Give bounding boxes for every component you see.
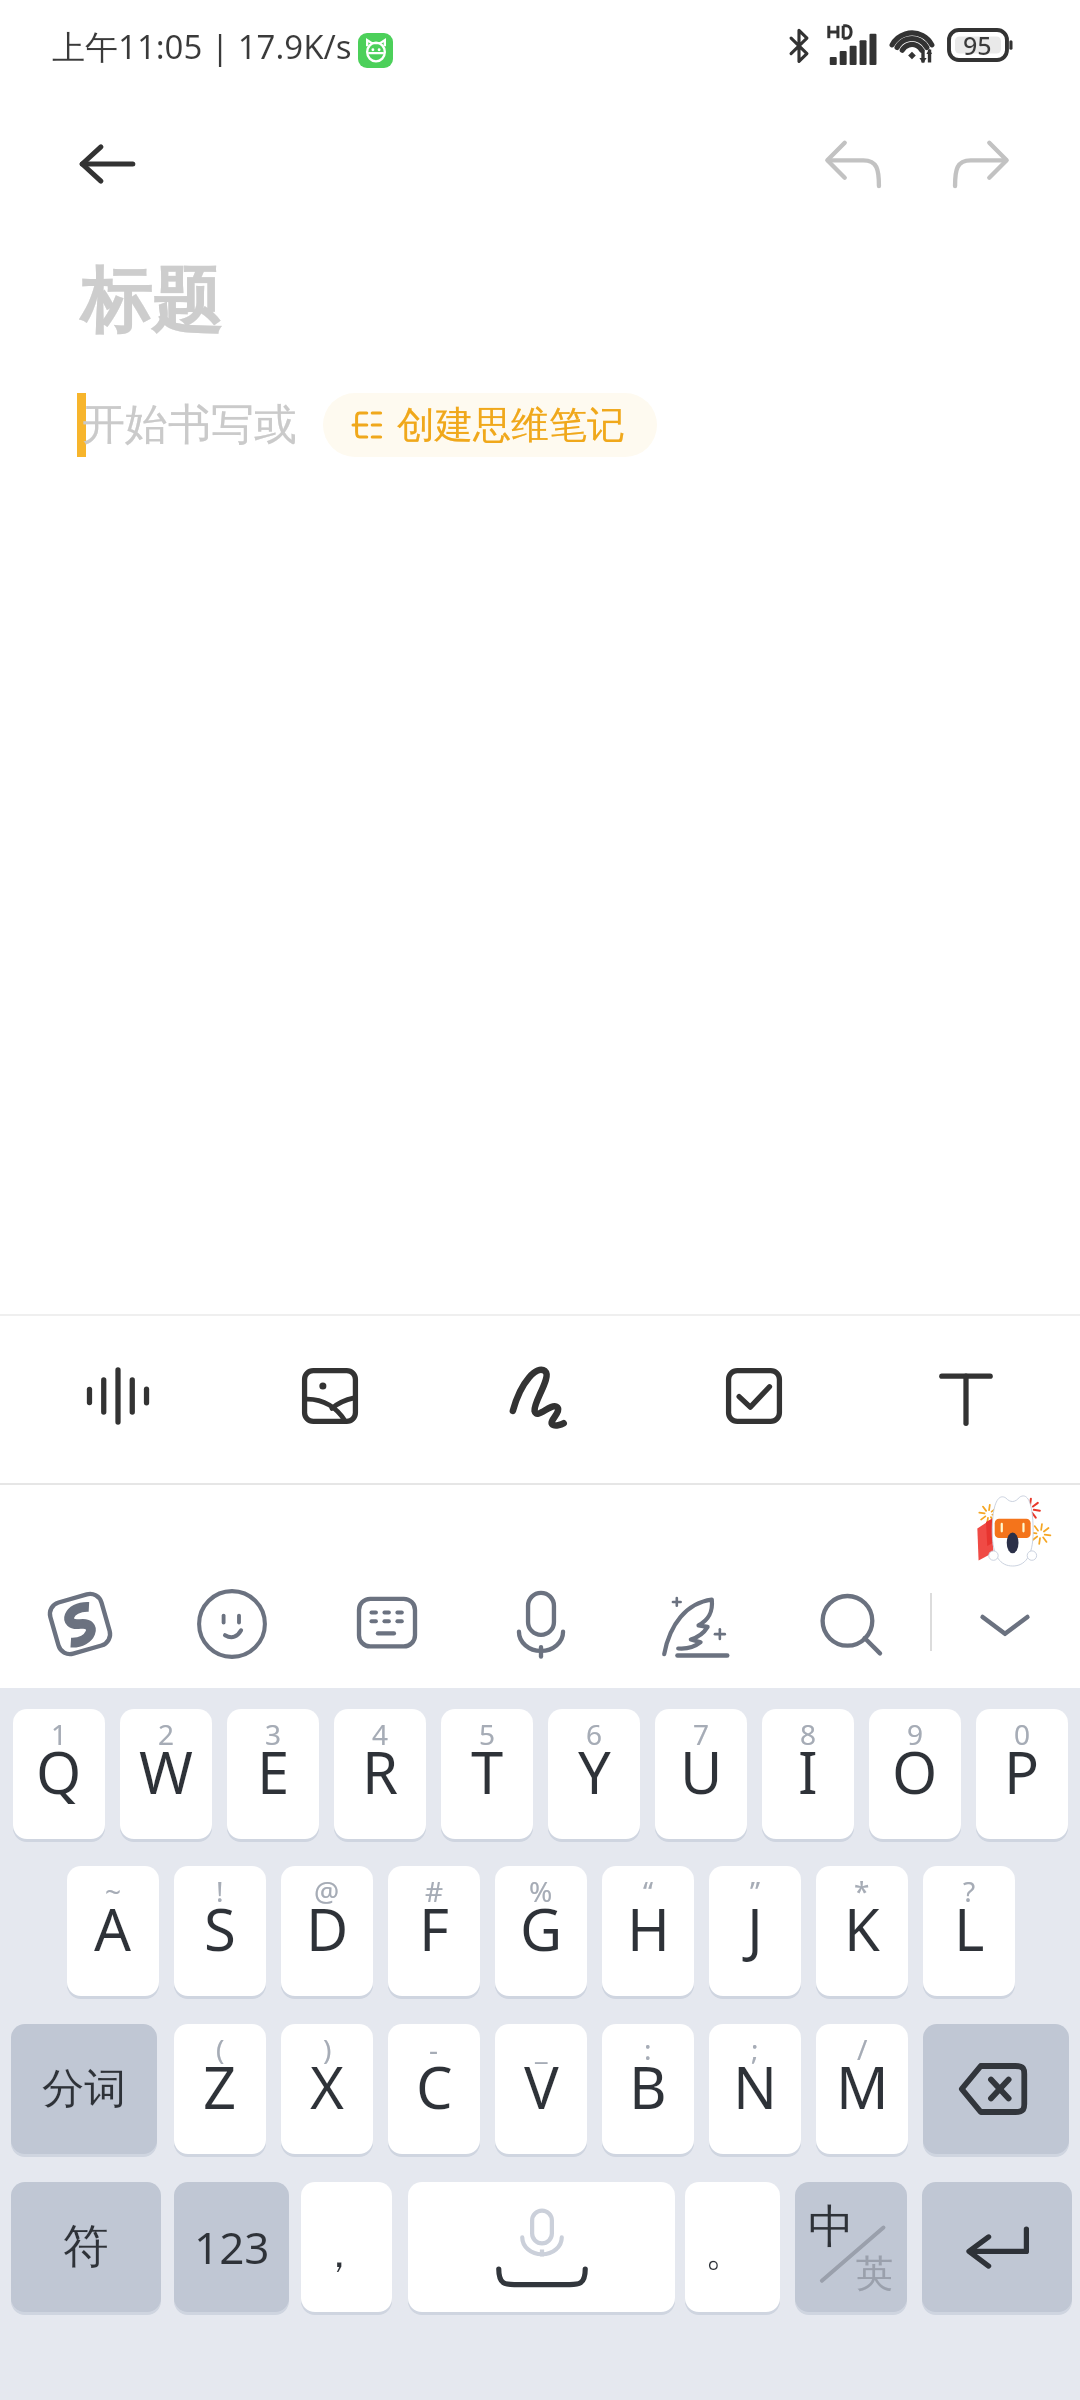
staticText: D bbox=[306, 1889, 349, 1968]
staticText: 2 bbox=[158, 1715, 175, 1753]
staticText: 0 bbox=[1014, 1715, 1031, 1753]
staticText: ; bbox=[751, 2030, 759, 2068]
staticText: J bbox=[747, 1889, 763, 1968]
button[interactable]: Chinese English toggle bbox=[795, 2182, 907, 2312]
staticText: 3 bbox=[265, 1715, 282, 1753]
staticText: I bbox=[798, 1732, 818, 1811]
button[interactable]: @ bbox=[281, 1866, 373, 1996]
button[interactable]: Hide keyboard bbox=[955, 1574, 1055, 1674]
button[interactable]: Search bbox=[802, 1574, 902, 1674]
button[interactable]: Enter bbox=[922, 2182, 1072, 2312]
staticText: 上午11:05 | 17.9K/s bbox=[52, 24, 352, 69]
button[interactable]: 2 bbox=[120, 1709, 212, 1839]
staticText: X bbox=[310, 2047, 344, 2126]
button[interactable]: Backspace bbox=[923, 2024, 1069, 2154]
button[interactable]: Text style bbox=[910, 1340, 1022, 1452]
staticText: “ bbox=[643, 1872, 654, 1910]
button[interactable]: 5 bbox=[441, 1709, 533, 1839]
button[interactable]: Handwriting bbox=[486, 1340, 598, 1452]
button[interactable]: 3 bbox=[227, 1709, 319, 1839]
button[interactable]: Voice memo bbox=[62, 1340, 174, 1452]
button[interactable]: Handwriting input bbox=[645, 1574, 745, 1674]
staticText: W bbox=[139, 1732, 193, 1811]
staticText: 7 bbox=[693, 1715, 710, 1753]
button[interactable]: 4 bbox=[334, 1709, 426, 1839]
staticText: 分词 bbox=[42, 2063, 126, 2116]
button[interactable]: Redo bbox=[934, 120, 1026, 212]
staticText: @ bbox=[314, 1872, 340, 1910]
button[interactable]: 。 bbox=[685, 2182, 780, 2312]
button[interactable]: / bbox=[816, 2024, 908, 2154]
button[interactable]: Space bbox=[408, 2182, 675, 2312]
button[interactable]: 创建思维笔记 bbox=[323, 393, 657, 457]
button[interactable]: _ bbox=[495, 2024, 587, 2154]
staticText: - bbox=[429, 2030, 439, 2068]
button[interactable]: ， bbox=[301, 2182, 392, 2312]
staticText: E bbox=[257, 1732, 290, 1811]
staticText: 5 bbox=[479, 1715, 496, 1753]
staticText: 1 bbox=[51, 1715, 68, 1753]
button[interactable]: 符 bbox=[11, 2182, 161, 2312]
button[interactable]: Back bbox=[62, 119, 152, 209]
staticText: Z bbox=[203, 2047, 237, 2126]
staticText: / bbox=[857, 2030, 868, 2068]
staticText: _ bbox=[535, 2030, 548, 2068]
staticText: ? bbox=[963, 1872, 976, 1910]
staticText: B bbox=[629, 2047, 667, 2126]
button[interactable]: Checklist bbox=[698, 1340, 810, 1452]
button[interactable]: Insert image bbox=[274, 1340, 386, 1452]
button[interactable]: 1 bbox=[13, 1709, 105, 1839]
staticText: ， bbox=[319, 2228, 359, 2278]
button[interactable]: ( bbox=[174, 2024, 266, 2154]
staticText: R bbox=[362, 1732, 399, 1811]
staticText: ) bbox=[323, 2030, 332, 2068]
button[interactable]: 0 bbox=[976, 1709, 1068, 1839]
button[interactable]: Voice input bbox=[491, 1574, 591, 1674]
button[interactable]: ) bbox=[281, 2024, 373, 2154]
staticText: 6 bbox=[586, 1715, 603, 1753]
staticText: T bbox=[471, 1732, 504, 1811]
staticText: 标题 bbox=[80, 257, 222, 346]
button[interactable]: 7 bbox=[655, 1709, 747, 1839]
button[interactable]: 分词 bbox=[11, 2024, 157, 2154]
button[interactable]: : bbox=[602, 2024, 694, 2154]
button[interactable]: 123 bbox=[174, 2182, 289, 2312]
staticText: Q bbox=[36, 1732, 82, 1811]
staticText: 123 bbox=[194, 2217, 270, 2277]
button[interactable]: 9 bbox=[869, 1709, 961, 1839]
staticText: Y bbox=[578, 1732, 611, 1811]
button[interactable]: Sogou input bbox=[30, 1574, 130, 1674]
staticText: 符 bbox=[63, 2218, 109, 2276]
button[interactable]: Emoji bbox=[182, 1574, 282, 1674]
button[interactable]: Undo bbox=[808, 120, 900, 212]
button[interactable]: # bbox=[388, 1866, 480, 1996]
button[interactable]: Keyboard layout bbox=[337, 1574, 437, 1674]
button[interactable]: 6 bbox=[548, 1709, 640, 1839]
button[interactable]: ? bbox=[923, 1866, 1015, 1996]
button[interactable]: 8 bbox=[762, 1709, 854, 1839]
button[interactable]: ; bbox=[709, 2024, 801, 2154]
staticText: ~ bbox=[105, 1872, 122, 1910]
staticText: 9 bbox=[907, 1715, 924, 1753]
staticText: H bbox=[627, 1889, 670, 1968]
button[interactable]: ! bbox=[174, 1866, 266, 1996]
staticText: F bbox=[419, 1889, 450, 1968]
staticText: O bbox=[892, 1732, 938, 1811]
staticText: * bbox=[854, 1872, 870, 1910]
button[interactable]: % bbox=[495, 1866, 587, 1996]
staticText: G bbox=[520, 1889, 563, 1968]
staticText: ” bbox=[750, 1872, 761, 1910]
button[interactable]: ” bbox=[709, 1866, 801, 1996]
staticText: % bbox=[529, 1872, 553, 1910]
staticText: ( bbox=[216, 2030, 225, 2068]
staticText: 开始书写或 bbox=[82, 398, 297, 452]
button[interactable]: ~ bbox=[67, 1866, 159, 1996]
staticText: : bbox=[644, 2030, 652, 2068]
staticText: 创建思维笔记 bbox=[397, 401, 625, 449]
button[interactable]: - bbox=[388, 2024, 480, 2154]
staticText: L bbox=[954, 1889, 985, 1968]
button[interactable]: “ bbox=[602, 1866, 694, 1996]
staticText: V bbox=[524, 2047, 559, 2126]
staticText: S bbox=[204, 1889, 236, 1968]
button[interactable]: * bbox=[816, 1866, 908, 1996]
